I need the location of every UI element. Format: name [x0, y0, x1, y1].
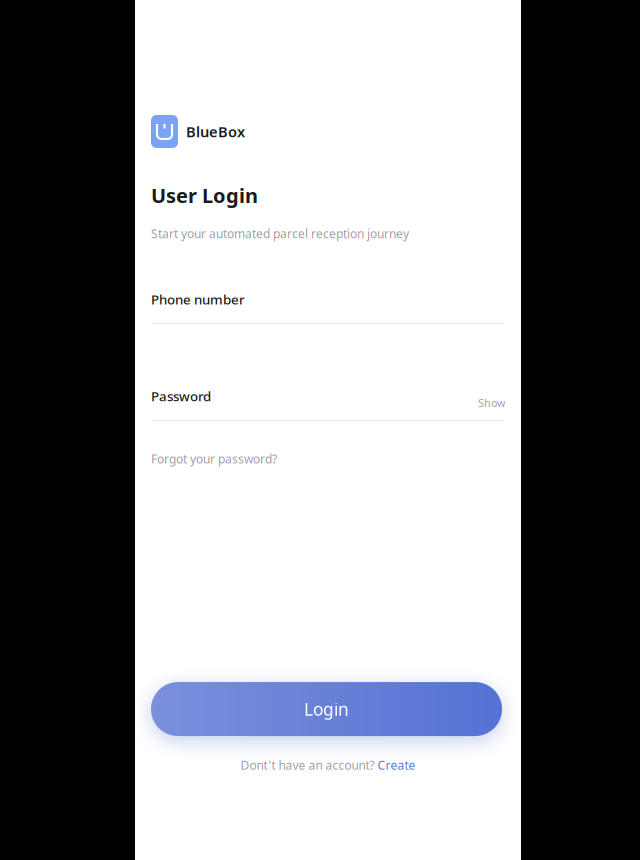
staticText: Start your automated parcel reception jo… [151, 226, 409, 241]
staticText: Create [377, 757, 415, 773]
button[interactable]: Create [377, 757, 415, 773]
button[interactable]: Show [478, 396, 505, 405]
button[interactable]: Forgot your password? [135, 451, 521, 467]
staticText: Forgot your password? [151, 451, 277, 467]
staticText: Password [151, 387, 211, 405]
staticText: Show [478, 396, 505, 410]
staticText: Dont't have an account? [240, 757, 377, 773]
staticText: Login [304, 698, 349, 721]
staticText: Phone number [151, 290, 245, 308]
staticText: BlueBox [186, 122, 245, 141]
button[interactable]: Login [135, 682, 518, 736]
staticText: User Login [151, 182, 258, 209]
